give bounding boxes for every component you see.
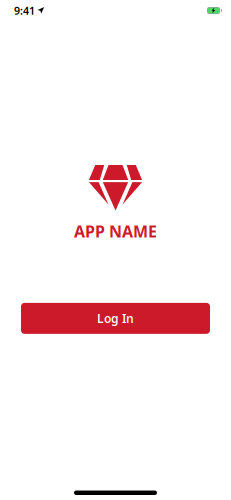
staticText: Log In	[97, 310, 134, 326]
button[interactable]: Log In	[21, 303, 210, 334]
staticText: APP NAME	[74, 221, 157, 242]
staticText: 9:41	[14, 3, 35, 18]
